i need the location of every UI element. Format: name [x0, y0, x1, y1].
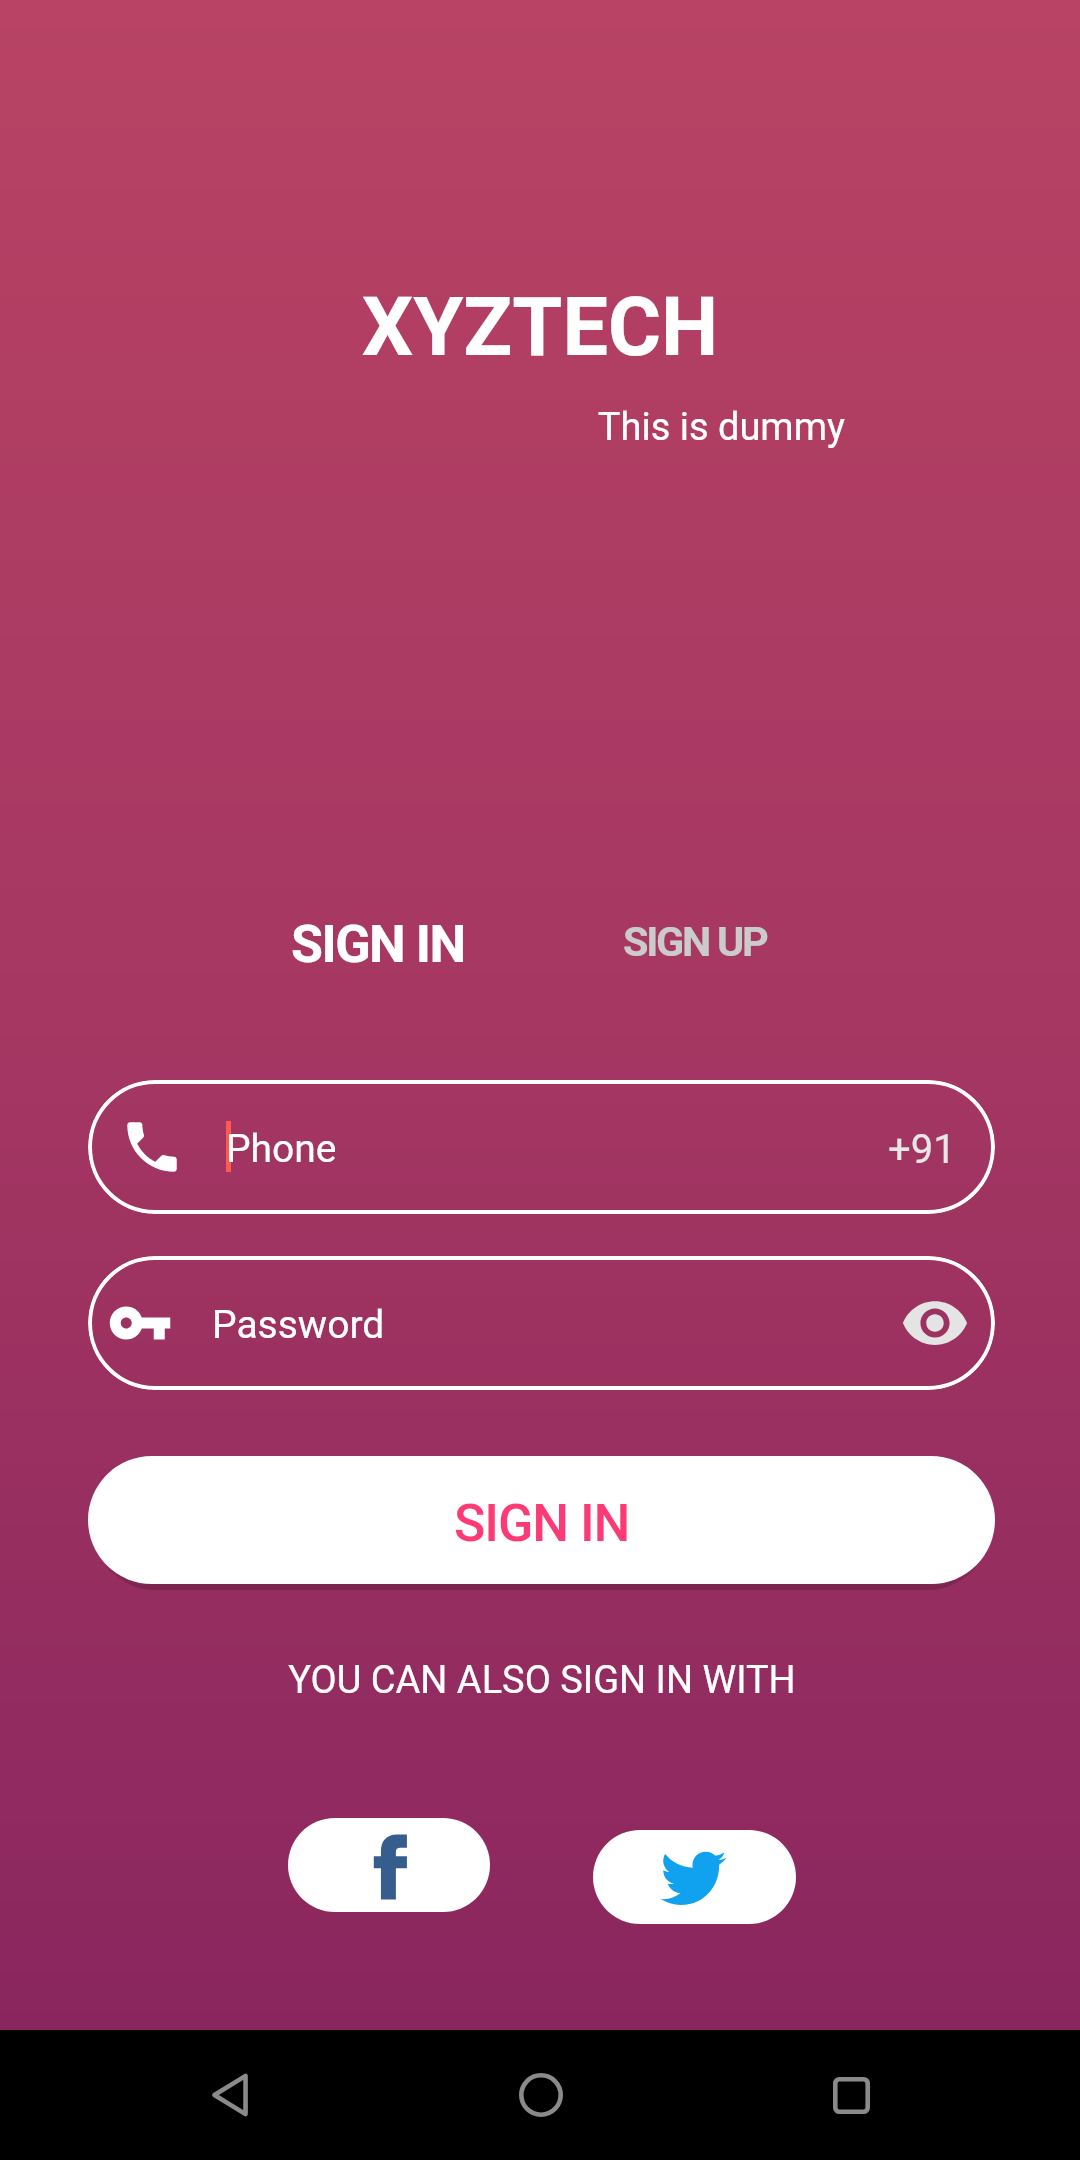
staticText: YOU CAN ALSO SIGN IN WITH	[2, 1658, 1080, 1703]
button[interactable]: Back	[170, 2035, 290, 2155]
button[interactable]: Home	[481, 2035, 601, 2155]
staticText: SIGN IN	[454, 1493, 630, 1554]
button[interactable]: SIGN IN	[88, 1456, 995, 1584]
staticText: SIGN IN	[291, 914, 465, 975]
staticText: +91	[888, 1126, 956, 1173]
button[interactable]: SIGN UP	[583, 905, 807, 978]
button[interactable]: Sign in with Facebook	[288, 1818, 490, 1912]
button[interactable]: Sign in with Twitter	[593, 1830, 796, 1924]
staticText: XYZTECH	[0, 280, 1080, 375]
button[interactable]: Show password	[890, 1278, 980, 1368]
button[interactable]: SIGN IN	[251, 902, 505, 987]
staticText: This is dummy	[0, 405, 845, 450]
button[interactable]: Phone	[88, 1080, 995, 1214]
staticText: Password	[212, 1302, 385, 1348]
button[interactable]: Password	[88, 1256, 995, 1390]
staticText: SIGN UP	[623, 917, 767, 966]
staticText: Phone	[226, 1126, 337, 1172]
button[interactable]: Recent apps	[791, 2035, 911, 2155]
